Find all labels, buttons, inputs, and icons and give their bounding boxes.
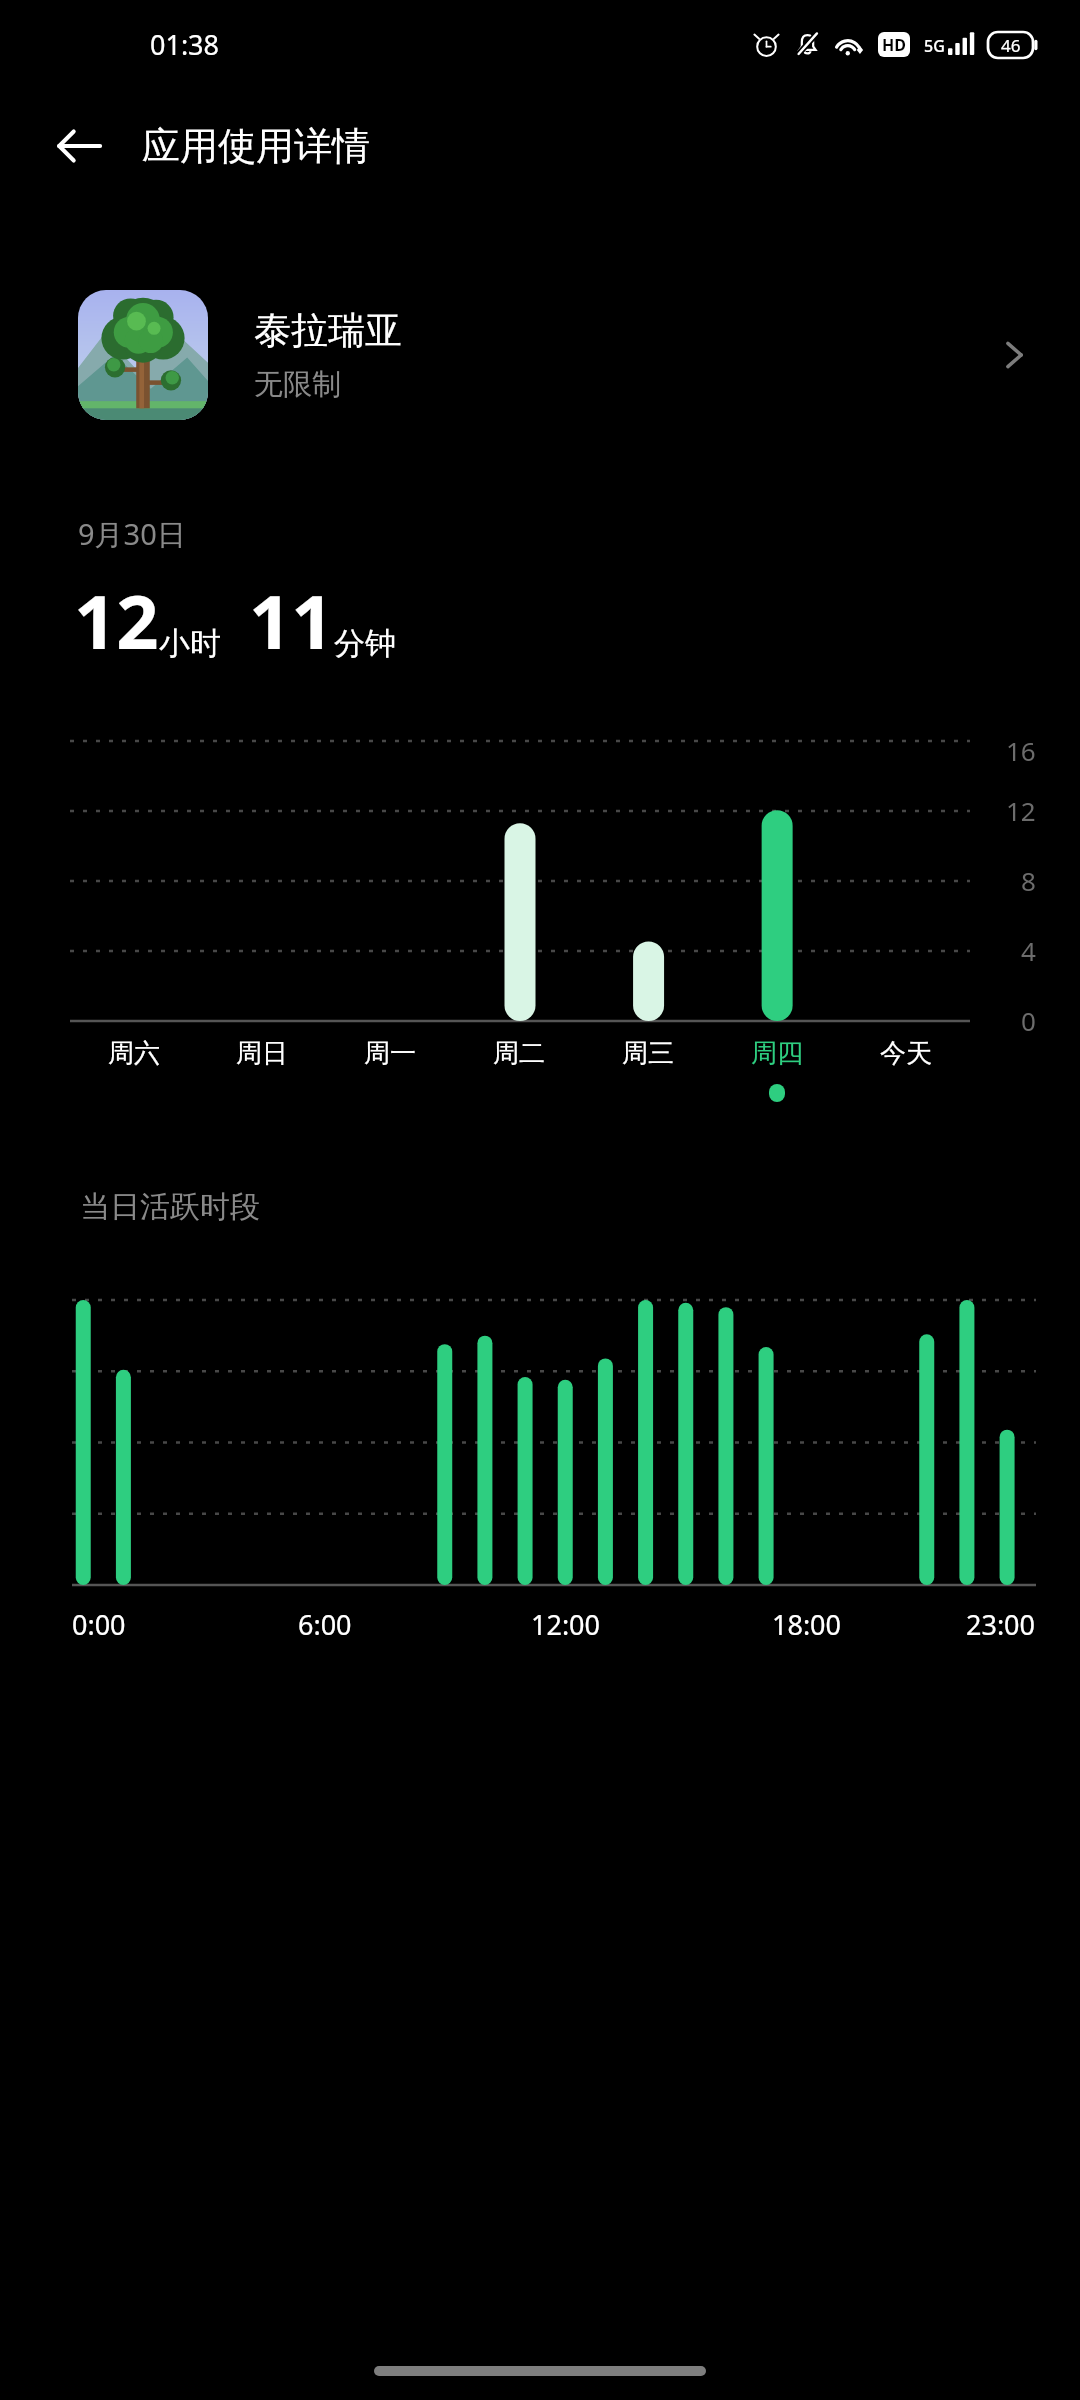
staticText: 12: [1006, 793, 1036, 828]
staticText: 5G: [924, 35, 945, 57]
staticText: 周二: [493, 1037, 545, 1070]
button[interactable]: 周四: [712, 1037, 841, 1102]
staticText: 0:00: [72, 1606, 126, 1643]
staticText: 泰拉瑞亚: [254, 307, 402, 354]
staticText: HD: [882, 34, 906, 56]
staticText: 23:00: [966, 1606, 1036, 1643]
staticText: 01:38: [150, 26, 220, 63]
staticText: 分钟: [334, 624, 396, 663]
staticText: 46: [1001, 34, 1021, 57]
button[interactable]: 周日: [198, 1037, 326, 1102]
staticText: 周三: [622, 1037, 674, 1070]
button[interactable]: 返回: [50, 117, 108, 175]
staticText: 应用使用详情: [142, 122, 370, 170]
staticText: 6:00: [298, 1606, 352, 1643]
button[interactable]: 泰拉瑞亚: [0, 280, 1080, 430]
staticText: 0: [1021, 1003, 1036, 1038]
staticText: 9月30日: [78, 514, 186, 554]
staticText: 周一: [364, 1037, 416, 1070]
button[interactable]: 周二: [454, 1037, 583, 1102]
staticText: 周四: [751, 1037, 803, 1070]
button[interactable]: 今天: [841, 1037, 970, 1102]
staticText: 8: [1021, 863, 1036, 898]
button[interactable]: 周一: [326, 1037, 454, 1102]
staticText: 11: [249, 570, 334, 671]
staticText: 16: [1006, 733, 1036, 768]
button[interactable]: 周六: [70, 1037, 198, 1102]
button[interactable]: 周三: [583, 1037, 712, 1102]
staticText: 18:00: [772, 1606, 842, 1643]
staticText: 4: [1021, 933, 1036, 968]
staticText: 当日活跃时段: [80, 1188, 260, 1226]
staticText: 周六: [108, 1037, 160, 1070]
staticText: 12: [74, 570, 159, 671]
staticText: 小时: [159, 624, 221, 663]
staticText: 无限制: [254, 366, 341, 403]
staticText: 周日: [236, 1037, 288, 1070]
staticText: 今天: [880, 1037, 932, 1070]
staticText: 12:00: [531, 1606, 601, 1643]
